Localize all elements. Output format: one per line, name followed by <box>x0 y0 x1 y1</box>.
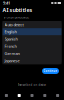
staticText: Spanish <box>4 36 17 42</box>
staticText: Auto detect <box>4 22 23 27</box>
staticText: Japanese <box>4 58 19 63</box>
button[interactable]: Library <box>13 91 26 100</box>
button[interactable]: French <box>2 43 61 50</box>
staticText: Continue <box>43 69 57 73</box>
staticText: English <box>4 29 16 34</box>
staticText: AI subtitles <box>2 6 32 14</box>
button[interactable]: Profile <box>51 91 64 100</box>
button[interactable]: Spanish <box>2 35 61 43</box>
button[interactable]: Search <box>26 91 38 100</box>
button[interactable]: Japanese <box>2 57 61 64</box>
button[interactable]: English <box>2 28 61 35</box>
staticText: 9:41 <box>3 0 10 6</box>
staticText: SPOKEN LANGUAGE <box>3 16 28 19</box>
button[interactable]: Auto detect <box>2 21 61 28</box>
staticText: German <box>4 51 19 56</box>
button[interactable]: German <box>2 50 61 57</box>
button[interactable]: Continue <box>42 68 59 74</box>
staticText: French <box>4 43 16 49</box>
button[interactable]: Home <box>0 91 13 100</box>
button[interactable]: Saved <box>38 91 51 100</box>
staticText: Transcribed on device <box>17 83 46 87</box>
